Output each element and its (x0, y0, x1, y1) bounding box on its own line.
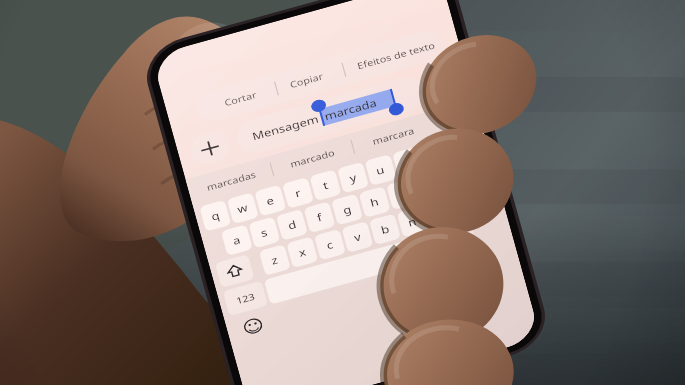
button[interactable]: Phone showing text selection toolbar and… (0, 0, 685, 385)
